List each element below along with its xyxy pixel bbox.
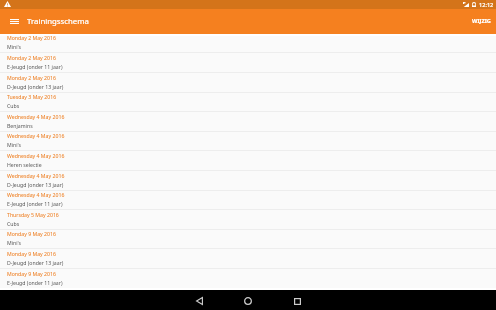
staticText: Monday 2 May 2016	[7, 54, 56, 61]
button[interactable]: Tuesday 3 May 2016	[0, 92, 496, 112]
button[interactable]: Wednesday 4 May 2016	[0, 190, 496, 210]
button[interactable]: Thursday 5 May 2016	[0, 210, 496, 230]
staticText: Wednesday 4 May 2016	[7, 172, 65, 179]
button[interactable]: Wednesday 4 May 2016	[0, 171, 496, 191]
staticText: Wednesday 4 May 2016	[7, 191, 65, 198]
staticText: Tuesday 3 May 2016	[7, 93, 57, 100]
staticText: D-Jeugd (onder 13 jaar)	[7, 181, 64, 188]
staticText: Wednesday 4 May 2016	[7, 132, 65, 139]
staticText: Cubs	[7, 102, 20, 109]
staticText: D-Jeugd (onder 13 jaar)	[7, 83, 64, 90]
staticText: Monday 2 May 2016	[7, 34, 56, 41]
staticText: Monday 9 May 2016	[7, 270, 56, 277]
button[interactable]: Monday 9 May 2016	[0, 229, 496, 249]
button[interactable]: Open navigation menu	[0, 9, 28, 34]
button[interactable]: Home	[231, 291, 265, 310]
button[interactable]: Recent apps	[280, 291, 314, 310]
staticText: E-Jeugd (onder 11 jaar)	[7, 279, 63, 286]
button[interactable]: Monday 9 May 2016	[0, 249, 496, 269]
staticText: Trainingsschema	[27, 16, 89, 27]
staticText: Monday 9 May 2016	[7, 230, 56, 237]
button[interactable]: Back	[182, 291, 216, 310]
staticText: Mini's	[7, 239, 22, 246]
button[interactable]: Wednesday 4 May 2016	[0, 131, 496, 151]
button[interactable]: WIJZIG	[466, 9, 496, 34]
button[interactable]: Monday 2 May 2016	[0, 73, 496, 93]
button[interactable]: Wednesday 4 May 2016	[0, 112, 496, 132]
staticText: Wednesday 4 May 2016	[7, 113, 65, 120]
button[interactable]: Monday 2 May 2016	[0, 33, 496, 53]
staticText: Cubs	[7, 220, 20, 227]
staticText: D-Jeugd (onder 13 jaar)	[7, 259, 64, 266]
staticText: Mini's	[7, 43, 22, 50]
staticText: Monday 2 May 2016	[7, 74, 56, 81]
staticText: Monday 9 May 2016	[7, 250, 56, 257]
button[interactable]: Wednesday 4 May 2016	[0, 151, 496, 171]
staticText: E-Jeugd (onder 11 jaar)	[7, 63, 63, 70]
staticText: Heren selectie	[7, 161, 42, 168]
staticText: Benjamins	[7, 122, 33, 129]
staticText: Mini's	[7, 141, 22, 148]
button[interactable]: Monday 9 May 2016	[0, 269, 496, 289]
staticText: Wednesday 4 May 2016	[7, 152, 65, 159]
staticText: 12:12	[479, 1, 494, 9]
staticText: E-Jeugd (onder 11 jaar)	[7, 200, 63, 207]
staticText: WIJZIG	[472, 17, 491, 25]
button[interactable]: Monday 2 May 2016	[0, 53, 496, 73]
staticText: Thursday 5 May 2016	[7, 211, 59, 218]
